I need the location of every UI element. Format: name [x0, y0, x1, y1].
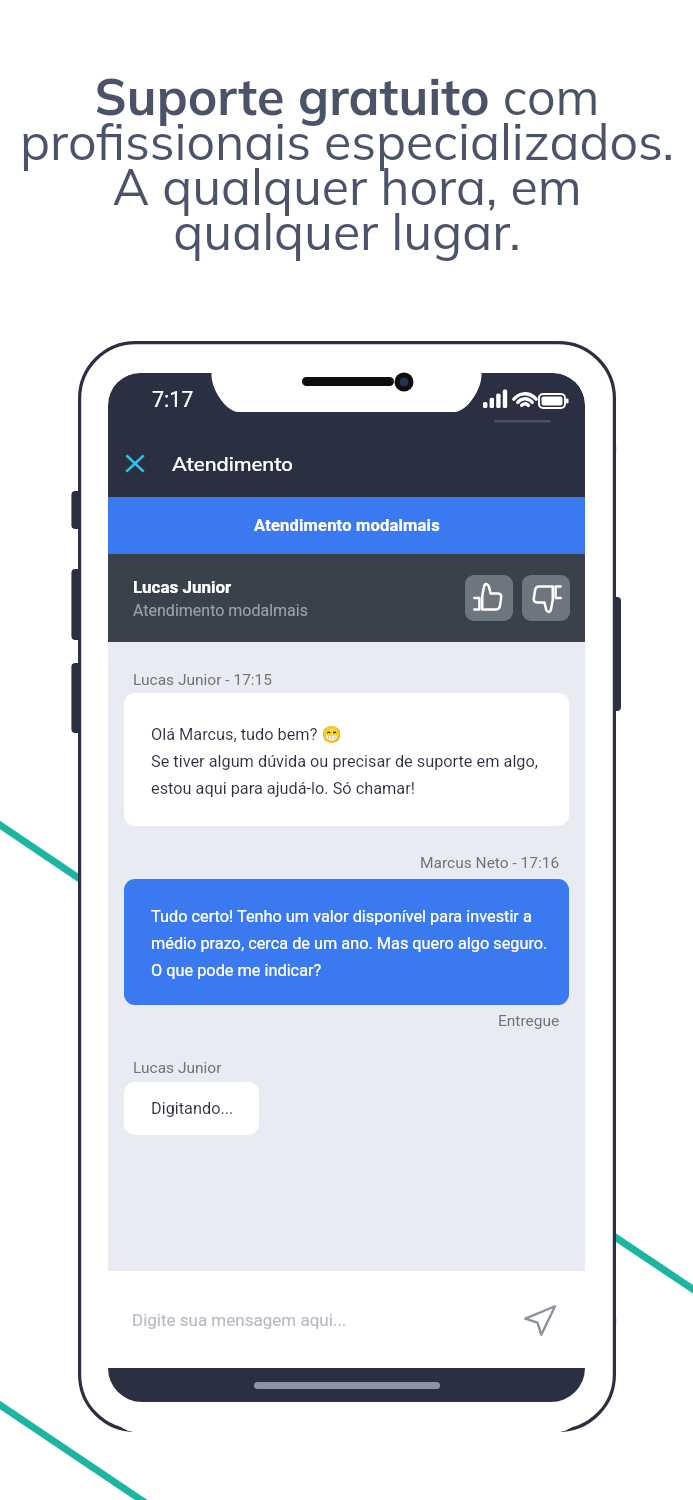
staticText: Digite sua mensagem aqui... [132, 1310, 472, 1330]
staticText: Suporte gratuito com profissionais espec… [7, 65, 687, 263]
button[interactable]: Enviar [517, 1297, 563, 1343]
staticText: Lucas Junior [133, 1059, 222, 1077]
staticText: 7:17 [152, 387, 194, 412]
staticText: Atendimento modalmais [133, 601, 308, 620]
staticText: Digitando... [151, 1099, 234, 1118]
staticText: Atendimento [172, 451, 293, 476]
button[interactable]: Fechar [108, 436, 162, 490]
staticText: Tudo certo! Tenho um valor disponível pa… [151, 907, 548, 980]
staticText: Entregue [498, 1012, 560, 1030]
button[interactable]: Atendimento modalmais [108, 497, 585, 554]
staticText: Marcus Neto - 17:16 [420, 854, 560, 872]
staticText: Olá Marcus, tudo bem? 😁 Se tiver algum d… [151, 725, 539, 798]
button[interactable]: Gostei [465, 575, 513, 621]
staticText: Lucas Junior - 17:15 [133, 671, 273, 689]
staticText: Atendimento modalmais [254, 516, 440, 535]
button[interactable]: Nao gostei [522, 575, 570, 621]
staticText: Lucas Junior [133, 577, 232, 597]
